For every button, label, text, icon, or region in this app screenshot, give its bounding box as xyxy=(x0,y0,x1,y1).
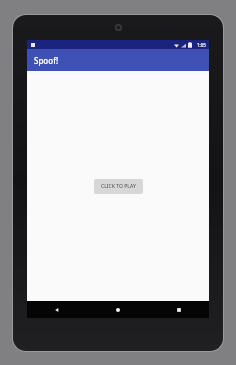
button[interactable]: CLICK TO PLAY xyxy=(94,179,143,194)
button[interactable]: Home xyxy=(87,301,148,318)
staticText: Spoof! xyxy=(34,55,59,66)
staticText: CLICK TO PLAY xyxy=(101,183,136,190)
staticText: 1:05 xyxy=(197,42,206,48)
button[interactable]: Recent apps xyxy=(148,301,209,318)
button[interactable]: Back xyxy=(27,301,87,318)
